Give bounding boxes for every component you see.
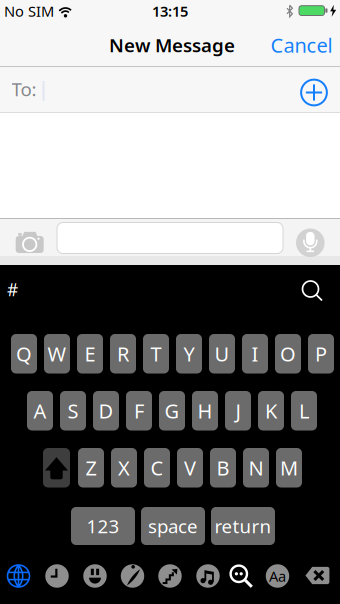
button[interactable]: Dictate (296, 228, 325, 257)
button[interactable]: K (258, 391, 284, 430)
staticText: N (248, 454, 263, 481)
staticText: return (214, 514, 271, 538)
button[interactable]: Activity (158, 564, 182, 588)
staticText: U (214, 340, 229, 367)
button[interactable]: S (60, 391, 86, 430)
staticText: V (184, 454, 196, 481)
button[interactable]: D (93, 391, 119, 430)
button[interactable]: Recents (45, 564, 69, 588)
button[interactable]: F (126, 391, 152, 430)
button[interactable]: C (144, 448, 170, 487)
staticText: space (148, 514, 198, 538)
button[interactable]: return (211, 507, 275, 545)
staticText: K (265, 397, 277, 424)
staticText: W (47, 340, 66, 367)
button[interactable]: Shift (43, 448, 70, 487)
staticText: 123 (86, 514, 119, 538)
staticText: O (280, 340, 296, 367)
staticText: Y (183, 340, 194, 367)
staticText: M (280, 454, 298, 481)
staticText: To: (11, 77, 36, 101)
button[interactable]: Music (196, 564, 220, 588)
button[interactable]: P (308, 334, 334, 373)
staticText: E (84, 340, 95, 367)
staticText: G (164, 397, 179, 424)
button[interactable]: W (44, 334, 70, 373)
button[interactable]: Y (176, 334, 202, 373)
button[interactable]: T (143, 334, 169, 373)
button[interactable]: M (276, 448, 302, 487)
button[interactable]: O (275, 334, 301, 373)
staticText: I (251, 340, 258, 367)
staticText: P (315, 340, 327, 367)
button[interactable]: Add Contact (300, 78, 328, 106)
button[interactable]: Search (299, 278, 325, 304)
staticText: F (134, 397, 144, 424)
staticText: H (197, 397, 212, 424)
staticText: New Message (109, 33, 235, 57)
staticText: # (7, 278, 18, 301)
staticText: 13:15 (152, 1, 188, 21)
staticText: Cancel (270, 32, 332, 58)
staticText: Aa (269, 566, 286, 586)
button[interactable]: 123 (71, 507, 135, 545)
staticText: S (67, 397, 78, 424)
button[interactable]: Message text field (57, 222, 283, 253)
button[interactable]: Smileys (83, 564, 107, 588)
button[interactable]: G (159, 391, 185, 430)
button[interactable]: L (291, 391, 317, 430)
staticText: Z (85, 454, 96, 481)
button[interactable]: To field (0, 67, 296, 111)
staticText: No SIM (4, 1, 54, 21)
button[interactable]: Nature (121, 564, 144, 588)
staticText: D (98, 397, 113, 424)
staticText: X (118, 454, 130, 481)
staticText: L (299, 397, 309, 424)
button[interactable]: Delete (305, 566, 330, 584)
button[interactable]: E (77, 334, 103, 373)
button[interactable]: Emoji Search (229, 564, 253, 588)
button[interactable]: A (27, 391, 53, 430)
staticText: R (117, 340, 129, 367)
staticText: Q (16, 340, 32, 367)
button[interactable]: N (243, 448, 269, 487)
button[interactable]: space (141, 507, 205, 545)
button[interactable]: I (242, 334, 268, 373)
button[interactable]: U (209, 334, 235, 373)
button[interactable]: Q (11, 334, 37, 373)
staticText: T (150, 340, 161, 367)
button[interactable]: J (225, 391, 251, 430)
staticText: J (235, 397, 240, 424)
staticText: A (33, 397, 46, 424)
button[interactable]: Text Mode (266, 564, 289, 588)
button[interactable]: H (192, 391, 218, 430)
staticText: B (216, 454, 229, 481)
button[interactable]: X (111, 448, 137, 487)
staticText: C (150, 454, 163, 481)
button[interactable]: Cancel (266, 30, 336, 60)
button[interactable]: R (110, 334, 136, 373)
button[interactable]: B (210, 448, 236, 487)
button[interactable]: V (177, 448, 203, 487)
button[interactable]: Attach Photo (16, 231, 44, 253)
button[interactable]: Z (78, 448, 104, 487)
button[interactable]: Next Keyboard (6, 564, 30, 588)
